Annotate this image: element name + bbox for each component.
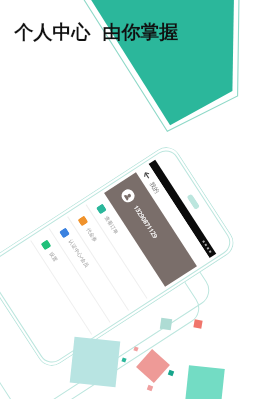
staticText: 我的 — [148, 180, 161, 195]
staticText: 认证中心/会员 — [67, 238, 90, 269]
staticText: 由你掌握 — [102, 21, 178, 45]
staticText: 查看订单 — [104, 215, 120, 235]
staticText: 13290871129 — [132, 204, 159, 240]
staticText: 设置 — [48, 251, 59, 262]
staticText: 个人中心 — [14, 21, 90, 45]
staticText: 代金券 — [85, 227, 98, 243]
